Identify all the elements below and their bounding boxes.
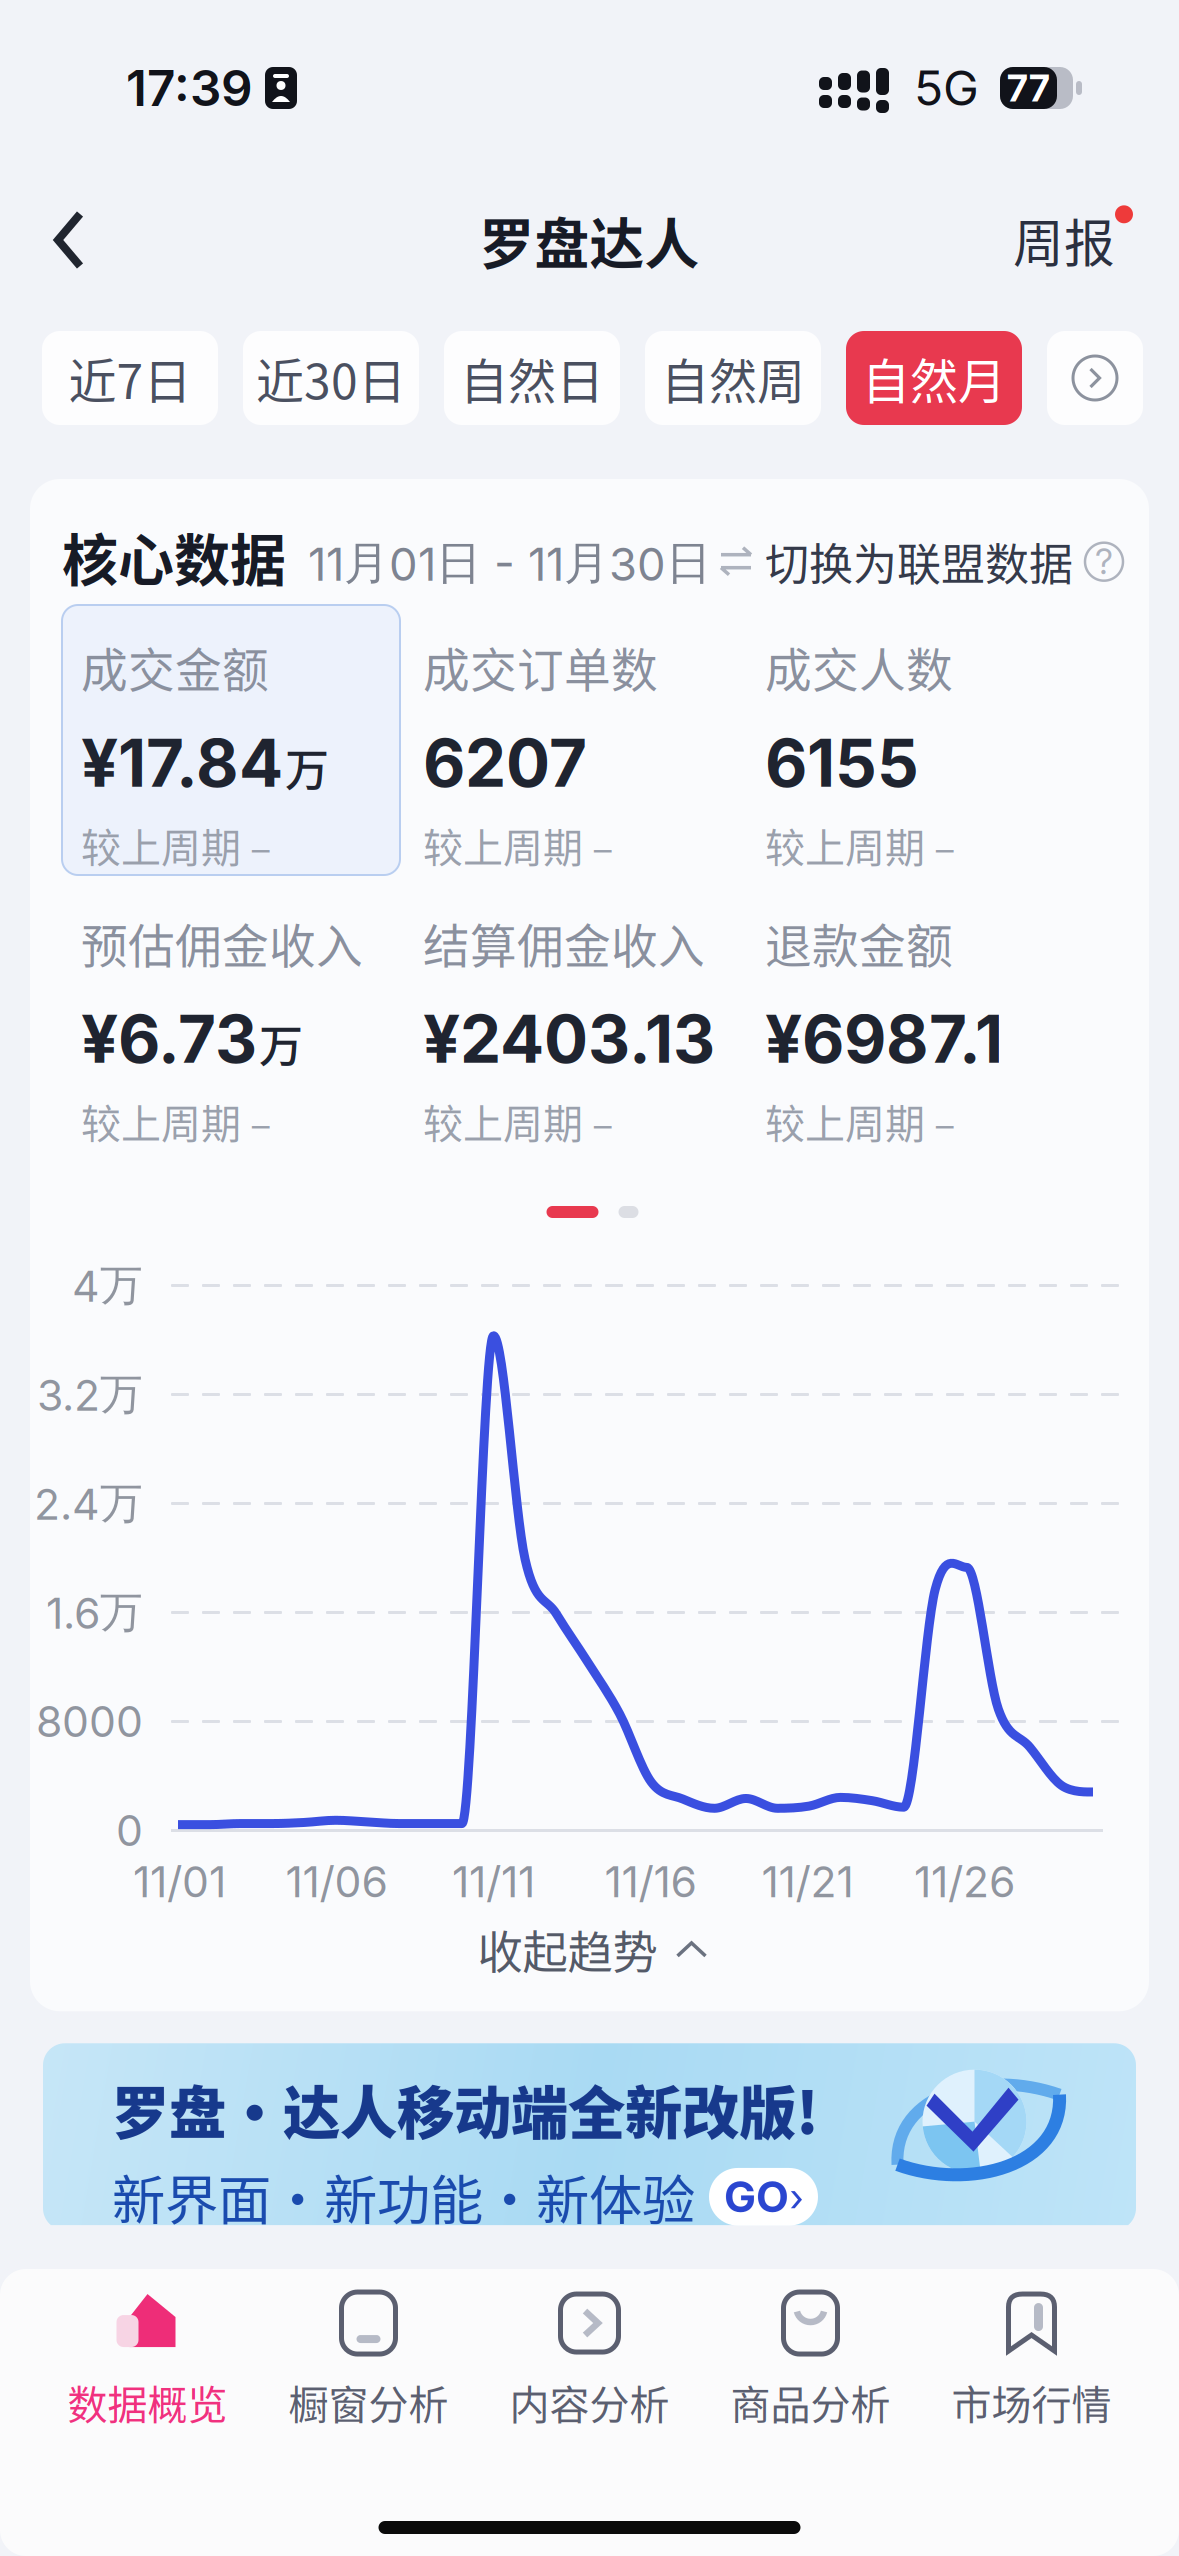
staticText: 5G bbox=[914, 59, 979, 117]
staticText: GO bbox=[724, 2171, 789, 2223]
button[interactable]: 成交人数 bbox=[746, 605, 1088, 881]
button[interactable]: 结算佣金收入 bbox=[404, 881, 746, 1157]
button[interactable]: 收起趋势 bbox=[477, 1911, 707, 1988]
staticText: 较上周期 – bbox=[423, 1092, 613, 1150]
button[interactable]: 市场行情 bbox=[921, 2295, 1142, 2425]
staticText: 自然周 bbox=[661, 343, 805, 413]
staticText: 预估佣金收入 bbox=[81, 909, 363, 977]
staticText: 8000 bbox=[36, 1696, 143, 1747]
staticText: 77 bbox=[1007, 65, 1050, 111]
staticText: 自然月 bbox=[862, 343, 1006, 413]
staticText: 核心数据 bbox=[62, 516, 286, 597]
staticText: 1.6万 bbox=[46, 1586, 143, 1639]
staticText: › bbox=[790, 2173, 803, 2221]
staticText: ? bbox=[1095, 541, 1113, 583]
staticText: 新界面·新功能·新体验 bbox=[112, 2158, 695, 2235]
staticText: 自然日 bbox=[460, 343, 604, 413]
staticText: ¥6987.1 bbox=[765, 999, 1003, 1078]
button[interactable]: 近30日 bbox=[243, 331, 419, 425]
staticText: 近30日 bbox=[256, 343, 406, 413]
staticText: 11月01日 - 11月30日 bbox=[308, 535, 711, 592]
button[interactable]: 自然周 bbox=[645, 331, 821, 425]
staticText: 商品分析 bbox=[730, 2373, 890, 2431]
button[interactable]: 退款金额 bbox=[746, 881, 1088, 1157]
staticText: 切换为联盟数据 bbox=[765, 530, 1073, 593]
staticText: 11/11 bbox=[452, 1856, 535, 1908]
staticText: 退款金额 bbox=[765, 909, 953, 977]
staticText: 3.2万 bbox=[37, 1368, 143, 1421]
staticText: 11/26 bbox=[914, 1856, 1015, 1908]
staticText: 周报 bbox=[1013, 203, 1115, 277]
staticText: 11/16 bbox=[604, 1856, 696, 1908]
staticText: 11/01 bbox=[133, 1856, 226, 1908]
staticText: 近7日 bbox=[68, 343, 191, 413]
staticText: 2.4万 bbox=[34, 1477, 143, 1530]
staticText: 较上周期 – bbox=[765, 1092, 955, 1150]
button[interactable]: 内容分析 bbox=[479, 2295, 700, 2425]
staticText: 成交金额 bbox=[81, 633, 269, 701]
staticText: 市场行情 bbox=[951, 2373, 1111, 2431]
staticText: ¥17.84 bbox=[81, 723, 283, 802]
staticText: 收起趋势 bbox=[477, 1917, 657, 1982]
staticText: 罗盘·达人移动端全新改版! bbox=[112, 2067, 819, 2150]
staticText: 成交订单数 bbox=[423, 633, 658, 701]
button[interactable]: 周报 bbox=[1013, 181, 1179, 299]
staticText: 较上周期 – bbox=[765, 816, 955, 874]
staticText: 万 bbox=[259, 1012, 303, 1075]
button[interactable]: 预估佣金收入 bbox=[62, 881, 404, 1157]
staticText: 6155 bbox=[765, 723, 919, 802]
staticText: 4万 bbox=[72, 1259, 143, 1312]
staticText: 较上周期 – bbox=[81, 1092, 271, 1150]
button[interactable]: 罗盘·达人移动端全新改版! bbox=[43, 2043, 1136, 2230]
staticText: 较上周期 – bbox=[81, 816, 271, 874]
button[interactable]: 返回 bbox=[0, 185, 128, 295]
button[interactable]: 橱窗分析 bbox=[258, 2295, 479, 2425]
staticText: 罗盘达人 bbox=[479, 200, 699, 280]
staticText: ¥2403.13 bbox=[423, 999, 715, 1078]
staticText: 万 bbox=[285, 736, 329, 799]
button[interactable]: 成交金额 bbox=[62, 605, 404, 881]
button[interactable]: 更多时间筛选 bbox=[1047, 331, 1143, 425]
staticText: 11/21 bbox=[761, 1856, 853, 1908]
button[interactable]: 自然月 bbox=[846, 331, 1022, 425]
staticText: 结算佣金收入 bbox=[423, 909, 705, 977]
staticText: 内容分析 bbox=[509, 2373, 669, 2431]
staticText: 较上周期 – bbox=[423, 816, 613, 874]
button[interactable]: 近7日 bbox=[42, 331, 218, 425]
staticText: 11/06 bbox=[285, 1856, 387, 1908]
button[interactable]: 自然日 bbox=[444, 331, 620, 425]
staticText: 橱窗分析 bbox=[288, 2373, 448, 2431]
button[interactable]: 成交订单数 bbox=[404, 605, 746, 881]
staticText: 6207 bbox=[423, 723, 587, 802]
staticText: 0 bbox=[116, 1805, 143, 1856]
button[interactable]: 切换为联盟数据 bbox=[719, 530, 1123, 593]
button[interactable]: 数据概览 bbox=[37, 2295, 258, 2425]
button[interactable]: 商品分析 bbox=[700, 2295, 921, 2425]
staticText: 17:39 bbox=[126, 58, 253, 118]
staticText: 成交人数 bbox=[765, 633, 953, 701]
staticText: 数据概览 bbox=[67, 2373, 227, 2431]
staticText: ¥6.73 bbox=[81, 999, 257, 1078]
